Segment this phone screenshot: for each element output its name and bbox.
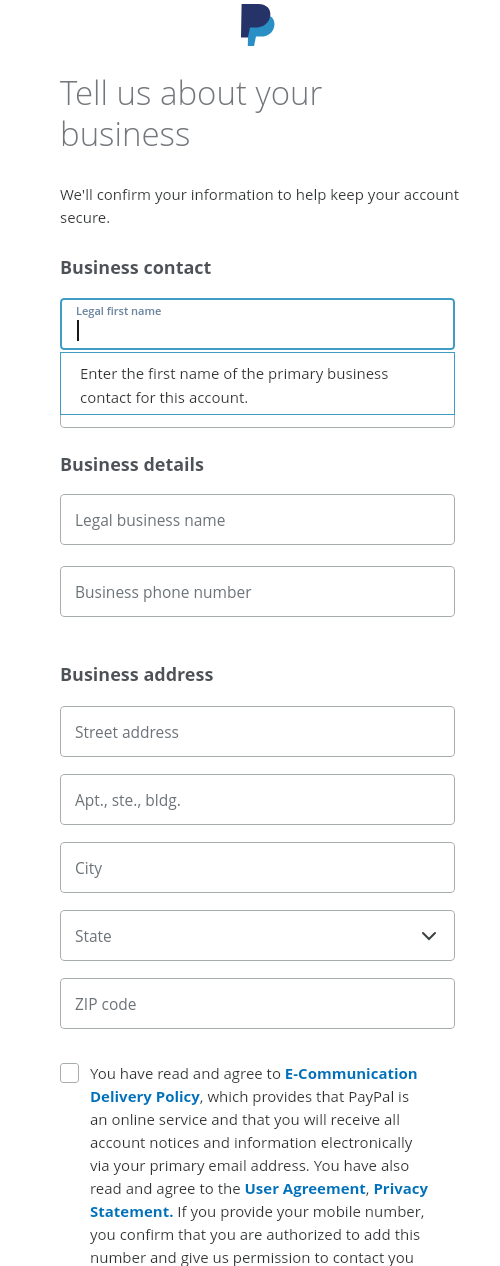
staticText: ZIP code (75, 993, 137, 1014)
other: Open state list (422, 932, 436, 940)
staticText: Apt., ste., bldg. (75, 789, 181, 810)
button[interactable]: Legal business name (60, 494, 455, 545)
button[interactable]: You have read and agree to E-Communicati… (60, 1063, 429, 1266)
button[interactable]: Legal first name (60, 298, 455, 350)
staticText: State (75, 925, 112, 946)
staticText: Business contact (60, 255, 212, 280)
staticText: Tell us about your business (60, 70, 440, 156)
button[interactable]: Business phone number (60, 566, 455, 617)
staticText: Legal business name (75, 509, 226, 530)
staticText: Business address (60, 662, 214, 687)
staticText: City (75, 857, 102, 878)
other: PayPal (241, 4, 275, 46)
staticText: Business details (60, 452, 205, 477)
button[interactable]: ZIP code (60, 978, 455, 1029)
button[interactable]: Street address (60, 706, 455, 757)
button[interactable]: Apt., ste., bldg. (60, 774, 455, 825)
staticText: You have read and agree to E-Communicati… (90, 1063, 429, 1266)
staticText: Business phone number (75, 581, 252, 602)
button[interactable]: State (60, 910, 455, 961)
staticText: Legal first name (76, 303, 162, 318)
button[interactable]: City (60, 842, 455, 893)
staticText: Enter the first name of the primary busi… (80, 363, 435, 407)
staticText: Street address (75, 721, 180, 742)
staticText: We'll confirm your information to help k… (60, 184, 462, 227)
